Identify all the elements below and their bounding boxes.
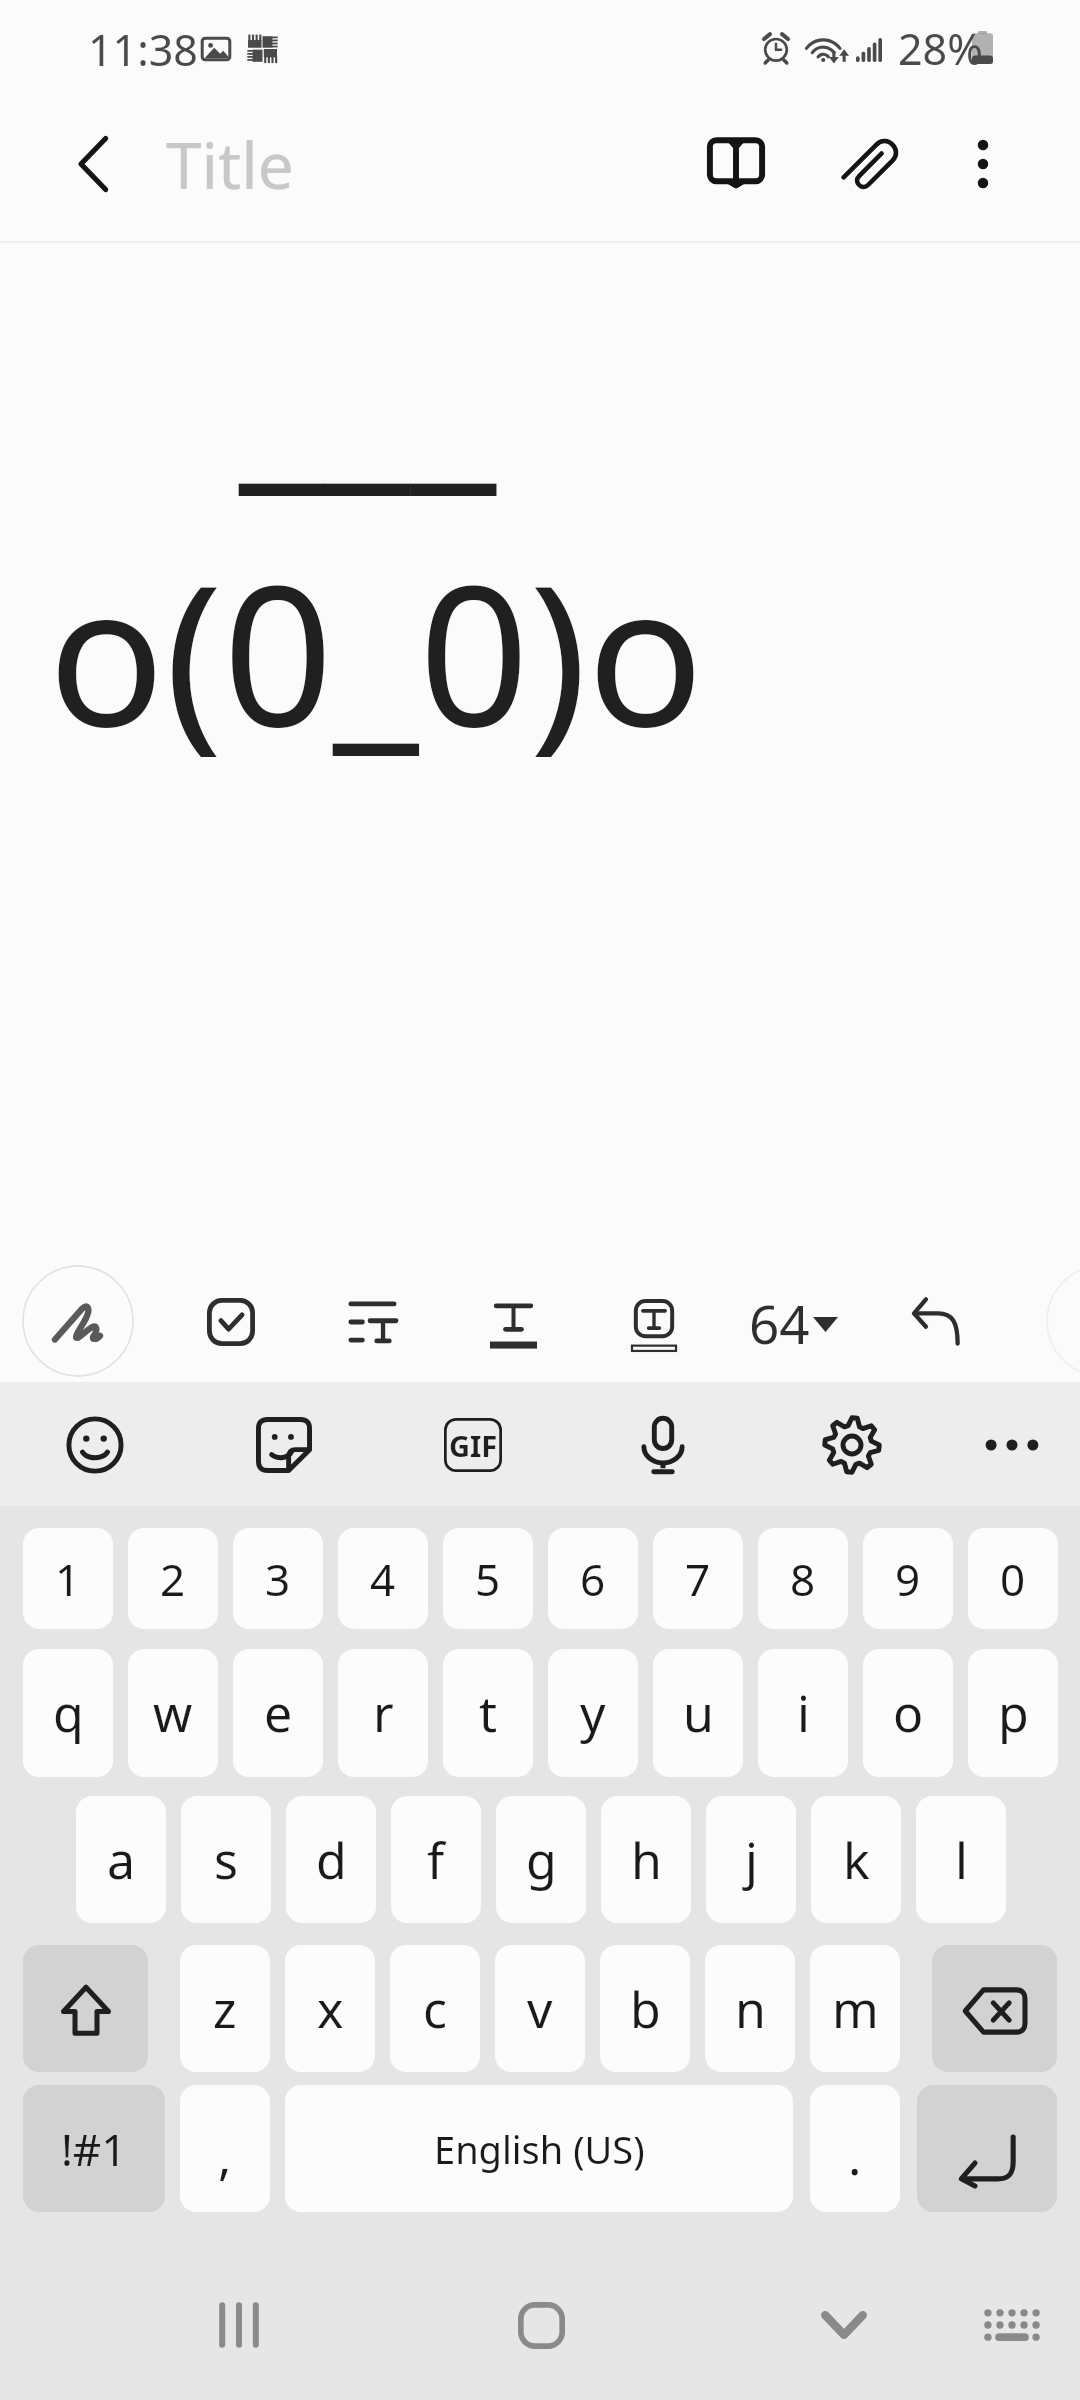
button[interactable]: 5 [443,1528,533,1629]
button[interactable]: 1 [23,1528,113,1629]
button[interactable]: u [653,1649,743,1777]
button[interactable]: w [128,1649,218,1777]
staticText: c [423,1975,447,2043]
button[interactable]: Paragraph style [320,1270,424,1374]
button[interactable]: Back [41,112,145,216]
button[interactable]: Enter [917,2085,1057,2212]
staticText: o(0_0)o [48,520,704,783]
staticText: 9 [895,1549,921,1609]
button[interactable]: 7 [653,1528,743,1629]
button[interactable]: Backspace [932,1945,1057,2072]
button[interactable]: Shift [23,1945,148,2072]
button[interactable]: More options [931,112,1035,216]
button[interactable]: e [233,1649,323,1777]
staticText: z [213,1975,237,2043]
staticText: 8 [790,1549,816,1609]
staticText: t [479,1679,498,1747]
button[interactable]: 6 [548,1528,638,1629]
staticText: m [832,1975,879,2043]
button[interactable]: English (US) [285,2085,793,2212]
button[interactable]: t [443,1649,533,1777]
button[interactable]: Switch keyboard [952,2265,1072,2385]
button[interactable]: 3 [233,1528,323,1629]
staticText: o [893,1679,924,1747]
button[interactable]: o [863,1649,953,1777]
button[interactable]: x [285,1945,375,2072]
staticText: w [153,1679,193,1747]
staticText: , [218,2122,232,2190]
button[interactable]: z [180,1945,270,2072]
button[interactable]: j [706,1796,796,1923]
button[interactable]: Hide keyboard [784,2265,904,2385]
button[interactable]: Emoji [47,1397,143,1493]
button[interactable]: 9 [863,1528,953,1629]
button[interactable]: Text style [461,1274,565,1378]
button[interactable]: b [600,1945,690,2072]
button[interactable]: 4 [338,1528,428,1629]
button[interactable]: Title [166,112,586,216]
staticText: 7 [685,1549,711,1609]
button[interactable]: !#1 [23,2085,165,2212]
button[interactable]: Attach [821,112,925,216]
button[interactable]: Keyboard settings [804,1397,900,1493]
staticText: k [843,1826,870,1894]
staticText: d [316,1826,347,1894]
staticText: 3 [265,1549,291,1609]
button[interactable]: v [495,1945,585,2072]
button[interactable]: m [810,1945,900,2072]
button[interactable]: y [548,1649,638,1777]
button[interactable]: Handwriting [22,1265,134,1377]
button[interactable]: d [286,1796,376,1923]
staticText: s [214,1826,238,1894]
button[interactable]: 64 [745,1269,845,1373]
button[interactable]: k [811,1796,901,1923]
button[interactable]: 8 [758,1528,848,1629]
staticText: x [317,1975,344,2043]
button[interactable]: s [181,1796,271,1923]
staticText: g [526,1826,557,1894]
button[interactable]: Reading mode [684,112,788,216]
staticText: GIF [449,1426,498,1465]
button[interactable]: More [964,1397,1060,1493]
button[interactable]: Text box [602,1273,706,1377]
button[interactable]: p [968,1649,1058,1777]
button[interactable]: Home [481,2265,601,2385]
staticText: p [998,1679,1029,1747]
staticText: 64 [749,1287,810,1359]
staticText: 11:38 [88,20,198,79]
button[interactable]: Voice input [615,1397,711,1493]
button[interactable]: , [180,2085,270,2212]
button[interactable]: l [916,1796,1006,1923]
button[interactable]: q [23,1649,113,1777]
button[interactable]: h [601,1796,691,1923]
staticText: f [427,1826,445,1894]
staticText: 28% [898,19,983,78]
staticText: 1 [55,1549,81,1609]
button[interactable]: . [810,2085,900,2212]
button[interactable]: 2 [128,1528,218,1629]
button[interactable]: r [338,1649,428,1777]
staticText: i [797,1679,810,1747]
staticText: English (US) [434,2123,645,2175]
button[interactable]: f [391,1796,481,1923]
staticText: j [745,1826,758,1894]
staticText: b [630,1975,661,2043]
button[interactable]: g [496,1796,586,1923]
button[interactable]: Undo [885,1270,989,1374]
staticText: !#1 [61,2119,127,2179]
staticText: 2 [160,1549,186,1609]
button[interactable]: 0 [968,1528,1058,1629]
staticText: e [264,1679,293,1747]
staticText: . [848,2122,862,2190]
button[interactable]: Recents [179,2265,299,2385]
staticText: r [373,1679,394,1747]
staticText: h [631,1826,662,1894]
button[interactable]: Sticker [236,1397,332,1493]
button[interactable]: Checklist [179,1270,283,1374]
button[interactable]: n [705,1945,795,2072]
button[interactable]: a [76,1796,166,1923]
button[interactable]: c [390,1945,480,2072]
button[interactable]: GIF [425,1397,521,1493]
staticText: l [955,1826,968,1894]
button[interactable]: i [758,1649,848,1777]
